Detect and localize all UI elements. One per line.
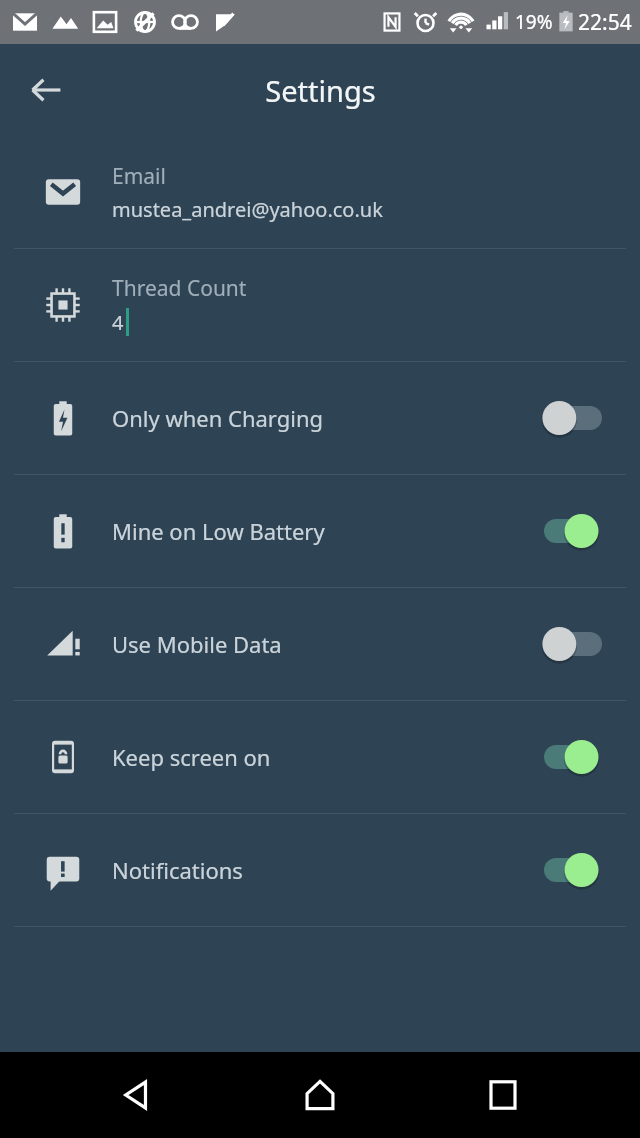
button[interactable]: On	[540, 848, 616, 892]
staticText: Keep screen on	[112, 742, 540, 772]
button[interactable]: Notifications	[0, 814, 640, 926]
staticText: Thread Count	[112, 274, 247, 303]
button[interactable]: On	[540, 509, 616, 553]
button[interactable]: Back	[93, 1052, 183, 1138]
button[interactable]: Mine on Low Battery	[0, 475, 640, 587]
staticText: 19%	[515, 9, 553, 35]
button[interactable]: Off	[540, 622, 616, 666]
button[interactable]: Recents	[458, 1052, 548, 1138]
staticText: Notifications	[112, 855, 540, 885]
staticText: 22:54	[578, 8, 632, 37]
button[interactable]: Use Mobile Data	[0, 588, 640, 700]
staticText: Email	[112, 162, 166, 191]
button[interactable]: Off	[540, 396, 616, 440]
button[interactable]: Thread Count	[0, 249, 640, 361]
staticText: Use Mobile Data	[112, 629, 540, 659]
staticText: Settings	[265, 71, 376, 110]
staticText: Mine on Low Battery	[112, 516, 540, 546]
staticText: Only when Charging	[112, 403, 540, 433]
staticText: 4	[112, 309, 124, 336]
button[interactable]: Back	[16, 60, 76, 120]
staticText: mustea_andrei@yahoo.co.uk	[112, 196, 383, 223]
button[interactable]: Only when Charging	[0, 362, 640, 474]
button[interactable]: Email	[0, 136, 640, 248]
button[interactable]: Home	[275, 1052, 365, 1138]
button[interactable]: On	[540, 735, 616, 779]
button[interactable]: Keep screen on	[0, 701, 640, 813]
